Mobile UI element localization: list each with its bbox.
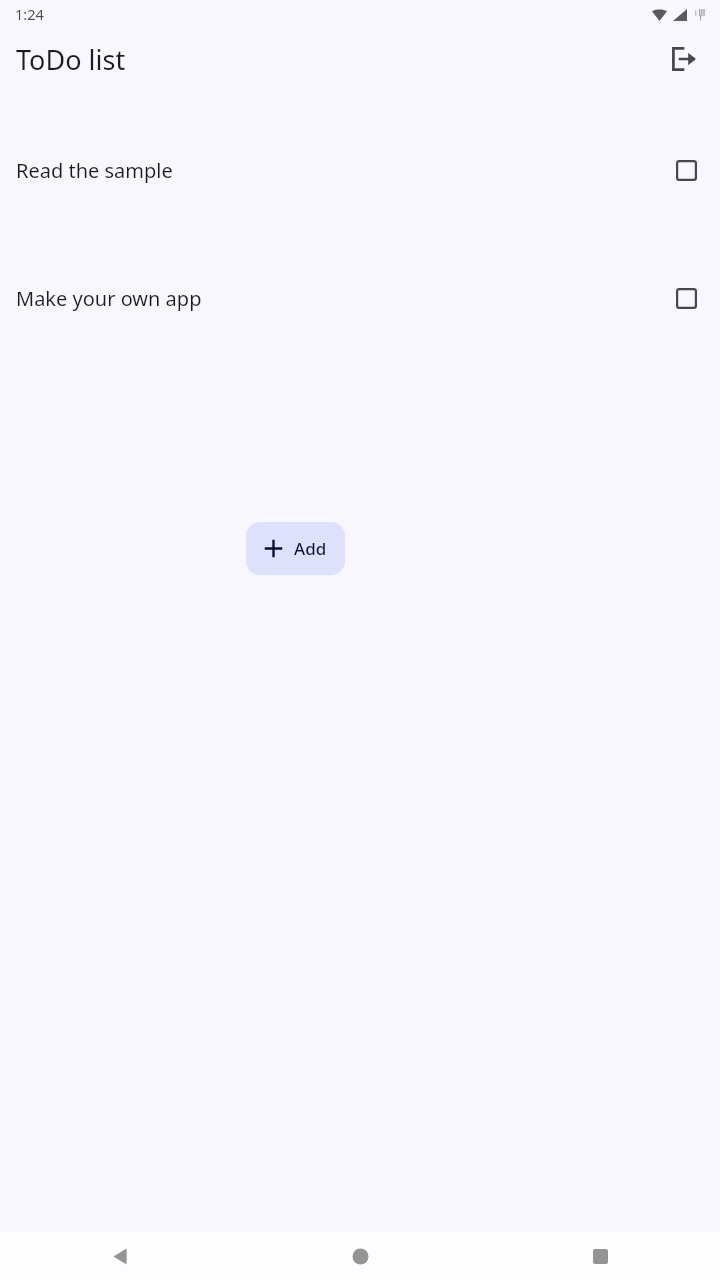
button[interactable]: Recent apps bbox=[480, 1232, 720, 1280]
button[interactable]: Toggle Read the sample bbox=[671, 155, 701, 185]
button[interactable]: Toggle Make your own app bbox=[671, 283, 701, 313]
button[interactable]: Back bbox=[0, 1232, 240, 1280]
button[interactable]: Add bbox=[246, 522, 345, 575]
staticText: Read the sample bbox=[16, 157, 671, 184]
button[interactable]: Make your own app bbox=[0, 274, 720, 322]
button[interactable]: Log out bbox=[660, 35, 708, 83]
staticText: ToDo list bbox=[16, 41, 126, 78]
staticText: Add bbox=[294, 537, 327, 560]
button[interactable]: Read the sample bbox=[0, 146, 720, 194]
staticText: 1:24 bbox=[15, 4, 44, 24]
button[interactable]: Home bbox=[240, 1232, 480, 1280]
staticText: Make your own app bbox=[16, 285, 671, 312]
